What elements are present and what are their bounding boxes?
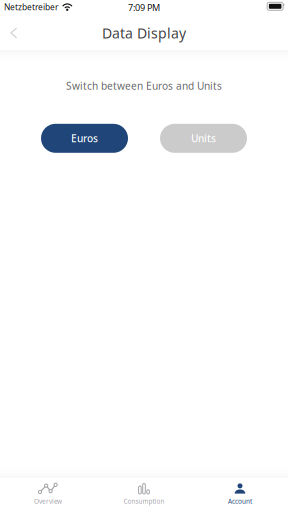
button[interactable]: Account xyxy=(192,478,288,512)
staticText: 7:09 PM xyxy=(128,1,160,14)
staticText: Overview xyxy=(34,497,62,506)
staticText: Data Display xyxy=(102,23,186,43)
staticText: Switch between Euros and Units xyxy=(66,79,222,93)
button[interactable]: Units xyxy=(160,124,247,153)
staticText: Consumption xyxy=(123,497,164,506)
button[interactable]: Back xyxy=(6,26,30,41)
staticText: Units xyxy=(191,131,216,145)
button[interactable]: Consumption xyxy=(96,478,192,512)
button[interactable]: Overview xyxy=(0,478,96,512)
staticText: Account xyxy=(228,497,252,506)
button[interactable]: Euros xyxy=(41,124,128,153)
staticText: Euros xyxy=(71,131,98,145)
staticText: Netzbetreiber xyxy=(4,1,58,13)
